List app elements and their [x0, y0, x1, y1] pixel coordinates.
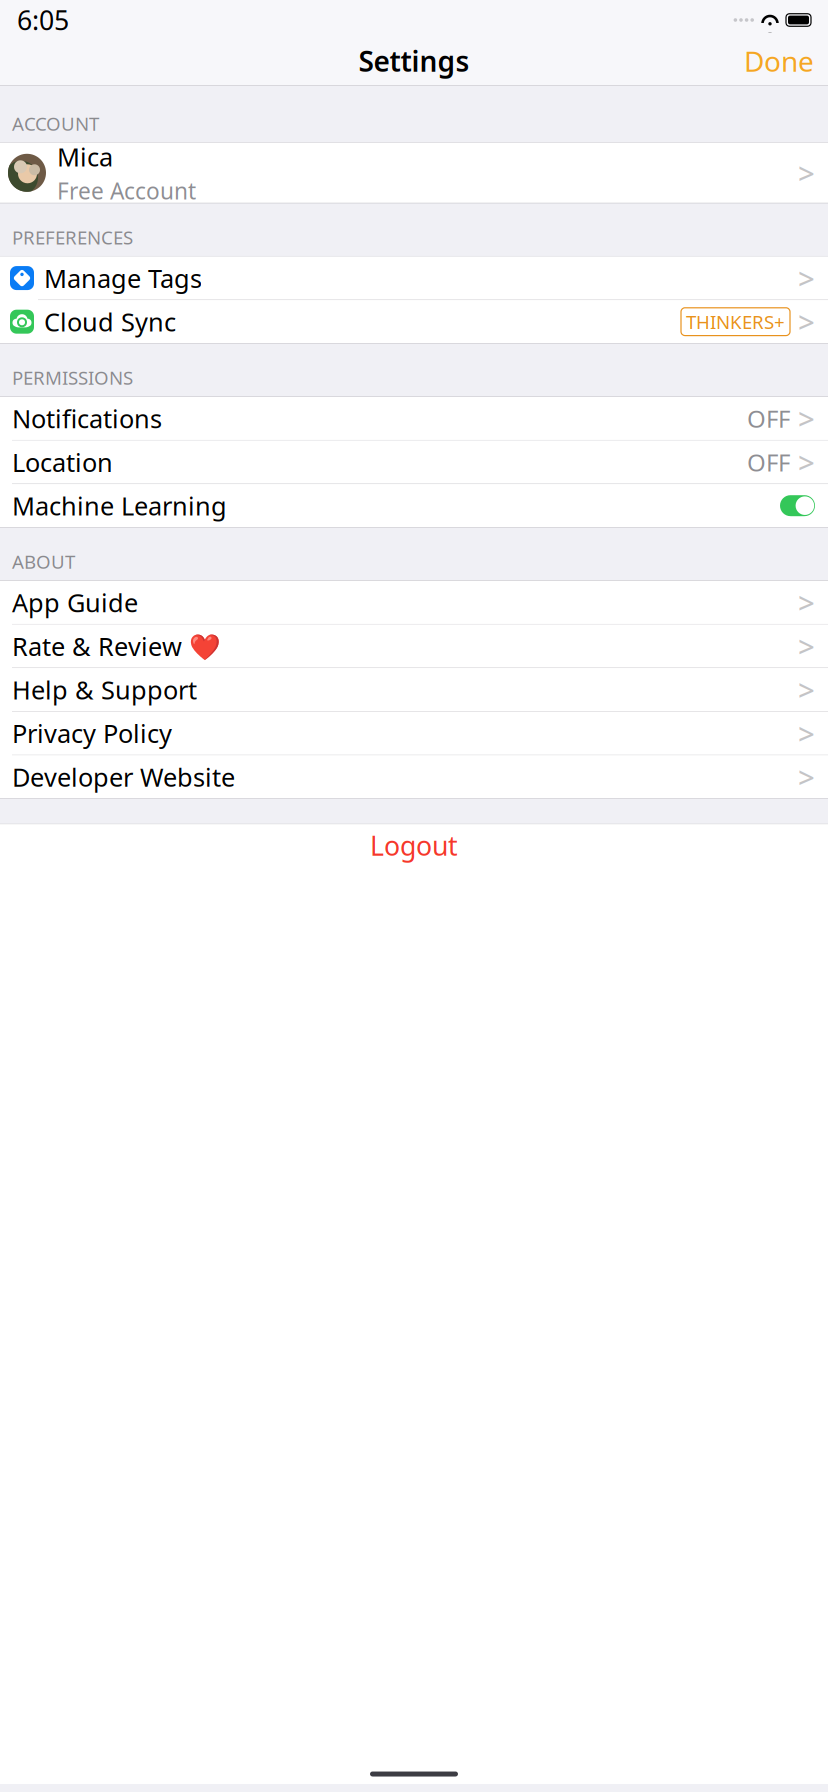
staticText: Done — [744, 42, 814, 80]
staticText: > — [798, 302, 815, 341]
staticText: > — [798, 627, 815, 666]
button[interactable]: Location — [0, 441, 828, 484]
button[interactable]: App Guide — [0, 581, 828, 625]
button[interactable]: Rate & Review ❤️ — [0, 625, 828, 668]
staticText: Free Account — [57, 176, 196, 206]
staticText: OFF — [747, 446, 790, 478]
staticText: Manage Tags — [44, 261, 202, 295]
staticText: > — [798, 399, 815, 438]
button[interactable]: Mica — [0, 143, 828, 203]
staticText: Help & Support — [12, 673, 197, 706]
staticText: Machine Learning — [12, 489, 227, 522]
button[interactable]: Privacy Policy — [0, 712, 828, 755]
staticText: PERMISSIONS — [12, 365, 133, 390]
staticText: > — [798, 714, 815, 753]
staticText: App Guide — [12, 586, 138, 619]
button[interactable]: Notifications — [0, 397, 828, 441]
staticText: Privacy Policy — [12, 716, 172, 750]
staticText: OFF — [747, 402, 790, 434]
staticText: > — [798, 443, 815, 482]
button[interactable]: Done — [730, 36, 828, 86]
staticText: > — [798, 583, 815, 622]
staticText: Mica — [57, 140, 113, 173]
button[interactable]: Logout — [0, 824, 828, 866]
staticText: > — [798, 259, 815, 298]
staticText: THINKERS+ — [686, 309, 785, 334]
staticText: ACCOUNT — [12, 111, 99, 136]
staticText: Notifications — [12, 402, 162, 435]
staticText: 6:05 — [17, 2, 69, 38]
staticText: ABOUT — [12, 549, 75, 574]
button[interactable]: Help & Support — [0, 668, 828, 712]
staticText: Cloud Sync — [44, 305, 176, 338]
staticText: Rate & Review ❤️ — [12, 629, 221, 663]
button[interactable]: Cloud Sync — [0, 300, 828, 343]
staticText: Logout — [370, 828, 458, 863]
staticText: Settings — [358, 42, 469, 80]
staticText: > — [798, 153, 815, 192]
staticText: Location — [12, 445, 113, 479]
button[interactable]: Manage Tags — [0, 257, 828, 300]
button[interactable]: Developer Website — [0, 755, 828, 798]
staticText: Developer Website — [12, 760, 235, 794]
staticText: > — [798, 670, 815, 709]
staticText: > — [798, 757, 815, 796]
staticText: PREFERENCES — [12, 225, 133, 250]
button[interactable]: Machine Learning — [0, 484, 828, 527]
